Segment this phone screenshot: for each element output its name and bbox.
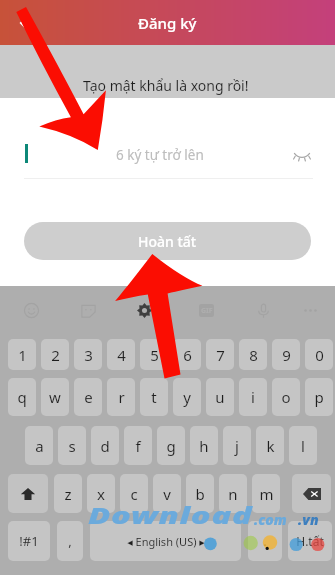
staticText: k [266, 436, 275, 456]
staticText: 2 [51, 345, 60, 365]
button[interactable]: Shift [8, 474, 48, 513]
staticText: 4 [117, 345, 126, 365]
button[interactable]: 3 [74, 339, 102, 370]
staticText: ◂ English (US) ▸ [127, 534, 205, 549]
button[interactable]: Back [8, 7, 40, 39]
staticText: d [100, 436, 110, 456]
button[interactable]: t [140, 378, 168, 416]
button[interactable]: u [206, 378, 234, 416]
button[interactable]: s [58, 426, 86, 465]
staticText: 9 [282, 345, 291, 365]
button[interactable]: m [252, 474, 280, 513]
staticText: GIF [201, 306, 213, 316]
button[interactable]: ◂ English (US) ▸ [90, 521, 241, 561]
button[interactable]: w [41, 378, 69, 416]
button[interactable]: Settings [127, 293, 161, 327]
staticText: . [263, 532, 267, 550]
button[interactable]: n [219, 474, 247, 513]
staticText: Hoàn tất [138, 232, 197, 251]
button[interactable]: x [87, 474, 115, 513]
button[interactable]: 5 [140, 339, 168, 370]
button[interactable]: g [157, 426, 185, 465]
staticText: .vn [298, 510, 319, 529]
staticText: e [84, 387, 93, 407]
staticText: a [35, 436, 44, 456]
staticText: r [118, 387, 125, 407]
staticText: 6 ký tự trở lên [116, 146, 204, 164]
staticText: t [151, 387, 157, 407]
staticText: h [199, 436, 209, 456]
button[interactable]: 0 [305, 339, 333, 370]
staticText: Download [88, 499, 253, 530]
button[interactable]: 7 [206, 339, 234, 370]
button[interactable]: 4 [107, 339, 135, 370]
staticText: o [281, 387, 291, 407]
staticText: f [135, 436, 141, 456]
button[interactable]: e [74, 378, 102, 416]
staticText: 7 [216, 345, 225, 365]
button[interactable]: 9 [272, 339, 300, 370]
staticText: j [235, 436, 239, 456]
staticText: x [97, 484, 105, 504]
button[interactable]: 2 [41, 339, 69, 370]
button[interactable]: GIF [189, 293, 223, 327]
staticText: c [130, 484, 138, 504]
button[interactable]: i [239, 378, 267, 416]
button[interactable]: r [107, 378, 135, 416]
staticText: 0 [315, 345, 324, 365]
staticText: 6 [183, 345, 192, 365]
button[interactable]: o [272, 378, 300, 416]
staticText: b [195, 484, 205, 504]
button[interactable]: f [124, 426, 152, 465]
staticText: n [228, 484, 238, 504]
button[interactable]: d [91, 426, 119, 465]
staticText: !#1 [19, 532, 39, 550]
button[interactable]: h [190, 426, 218, 465]
staticText: s [68, 436, 76, 456]
staticText: 8 [249, 345, 258, 365]
staticText: v [163, 484, 171, 504]
button[interactable]: a [25, 426, 53, 465]
button[interactable]: q [8, 378, 36, 416]
staticText: y [183, 387, 191, 407]
button[interactable]: !#1 [8, 521, 50, 561]
button[interactable]: b [186, 474, 214, 513]
button[interactable]: k [256, 426, 284, 465]
staticText: u [215, 387, 225, 407]
button[interactable]: . [248, 521, 282, 561]
button[interactable]: z [54, 474, 82, 513]
button[interactable]: l [289, 426, 317, 465]
button[interactable]: p [305, 378, 333, 416]
button[interactable]: Backspace [292, 474, 331, 513]
staticText: Tạo mật khẩu là xong rồi! [83, 76, 249, 95]
staticText: z [64, 484, 72, 504]
button[interactable]: , [57, 521, 83, 561]
button[interactable]: 8 [239, 339, 267, 370]
staticText: g [166, 436, 176, 456]
button[interactable]: 6 [173, 339, 201, 370]
staticText: , [68, 532, 72, 550]
button[interactable]: c [120, 474, 148, 513]
staticText: H.tất [296, 533, 324, 549]
staticText: 1 [18, 345, 27, 365]
staticText: i [251, 387, 255, 407]
staticText: l [301, 436, 305, 456]
staticText: Đăng ký [138, 13, 197, 33]
button[interactable]: j [223, 426, 251, 465]
button[interactable]: Password field [24, 133, 312, 173]
button[interactable]: 1 [8, 339, 36, 370]
button[interactable]: v [153, 474, 181, 513]
staticText: m [259, 484, 274, 504]
staticText: 5 [150, 345, 159, 365]
button[interactable]: Show password [288, 141, 316, 169]
button[interactable]: H.tất [288, 521, 332, 561]
button[interactable]: y [173, 378, 201, 416]
button[interactable]: Hoàn tất [24, 222, 311, 260]
staticText: p [314, 387, 324, 407]
staticText: 3 [84, 345, 93, 365]
staticText: .com [254, 510, 287, 529]
